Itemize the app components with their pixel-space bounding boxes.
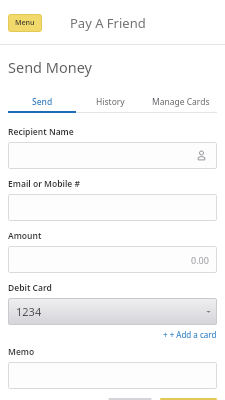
- button[interactable]: History: [76, 93, 144, 111]
- button[interactable]: Continue: [160, 398, 217, 400]
- staticText: + + Add a card: [163, 329, 217, 340]
- staticText: History: [96, 96, 125, 108]
- staticText: Email or Mobile #: [8, 178, 80, 190]
- staticText: 1234: [16, 304, 42, 319]
- staticText: Amount: [8, 230, 42, 242]
- button[interactable]: [8, 194, 217, 221]
- button[interactable]: Menu: [8, 14, 42, 32]
- staticText: Manage Cards: [152, 96, 210, 108]
- button[interactable]: Send: [8, 93, 76, 111]
- staticText: Pay A Friend: [70, 14, 146, 32]
- button[interactable]: [8, 362, 217, 389]
- staticText: Debit Card: [8, 282, 52, 294]
- button[interactable]: Choose contact: [8, 142, 217, 169]
- staticText: Recipient Name: [8, 126, 74, 138]
- staticText: Memo: [8, 346, 35, 358]
- button[interactable]: Manage Cards: [144, 93, 217, 111]
- staticText: Send Money: [8, 57, 92, 77]
- button[interactable]: 0.00: [8, 246, 217, 273]
- button[interactable]: + + Add a card: [163, 329, 217, 340]
- staticText: 0.00: [191, 254, 209, 266]
- button[interactable]: Reset: [108, 398, 152, 400]
- staticText: Send: [32, 96, 53, 108]
- button[interactable]: 1234: [8, 298, 217, 325]
- staticText: Menu: [15, 18, 35, 28]
- other: Choose contact: [196, 150, 207, 161]
